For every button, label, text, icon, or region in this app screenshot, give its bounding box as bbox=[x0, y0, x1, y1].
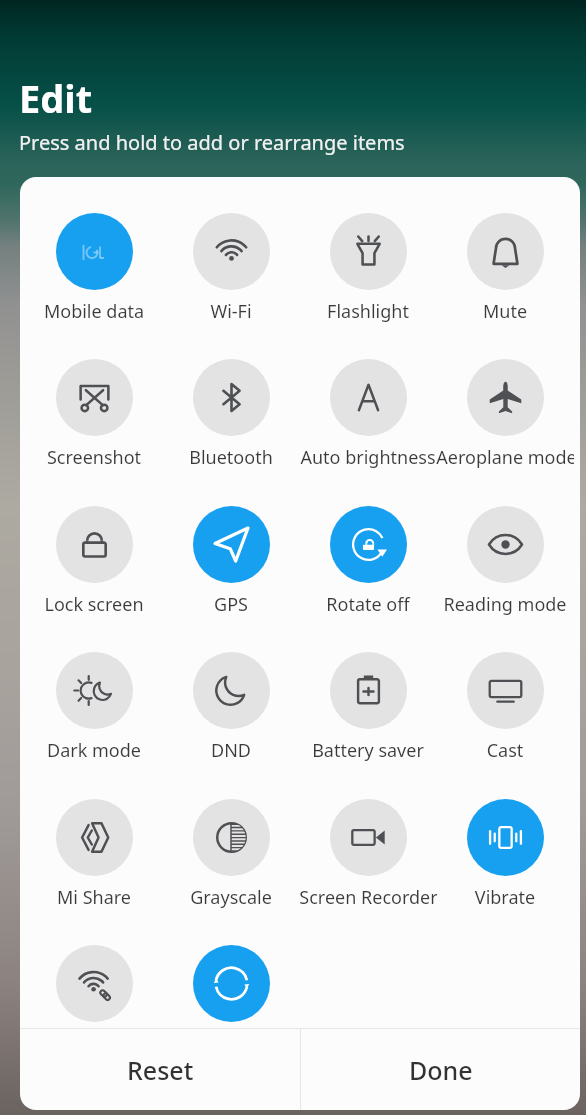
staticText: Grayscale bbox=[162, 885, 300, 910]
button[interactable]: GPS bbox=[163, 506, 300, 618]
button[interactable]: Bluetooth bbox=[163, 359, 300, 471]
staticText: Flashlight bbox=[299, 299, 437, 324]
staticText: Edit bbox=[19, 72, 93, 124]
button[interactable]: Dark mode bbox=[26, 652, 163, 764]
staticText: Cast bbox=[436, 738, 574, 763]
button[interactable]: Done bbox=[301, 1029, 580, 1110]
button[interactable]: Hotspot bbox=[26, 945, 163, 1057]
button[interactable]: Auto brightness bbox=[300, 359, 437, 471]
staticText: Done bbox=[409, 1053, 473, 1087]
staticText: Screenshot bbox=[25, 445, 163, 470]
button[interactable]: Mobile data bbox=[26, 213, 163, 325]
staticText: Aeroplane mode bbox=[436, 445, 574, 470]
button[interactable]: Vibrate bbox=[437, 799, 574, 911]
button[interactable]: Wi-Fi bbox=[163, 213, 300, 325]
staticText: GPS bbox=[162, 592, 300, 617]
staticText: Battery saver bbox=[299, 738, 437, 763]
button[interactable]: Sync bbox=[163, 945, 300, 1057]
staticText: Press and hold to add or rearrange items bbox=[19, 129, 405, 156]
staticText: Mi Share bbox=[25, 885, 163, 910]
staticText: Rotate off bbox=[299, 592, 437, 617]
button[interactable]: Reset bbox=[20, 1029, 300, 1110]
button[interactable]: Cast bbox=[437, 652, 574, 764]
button[interactable]: Reading mode bbox=[437, 506, 574, 618]
button[interactable]: Mute bbox=[437, 213, 574, 325]
button[interactable]: Flashlight bbox=[300, 213, 437, 325]
staticText: Mobile data bbox=[25, 299, 163, 324]
button[interactable]: Screenshot bbox=[26, 359, 163, 471]
button[interactable]: Screen Recorder bbox=[300, 799, 437, 911]
button[interactable]: Mi Share bbox=[26, 799, 163, 911]
staticText: Auto brightness bbox=[299, 445, 437, 470]
staticText: Lock screen bbox=[25, 592, 163, 617]
button[interactable]: Grayscale bbox=[163, 799, 300, 911]
staticText: DND bbox=[162, 738, 300, 763]
button[interactable]: DND bbox=[163, 652, 300, 764]
staticText: Dark mode bbox=[25, 738, 163, 763]
staticText: Screen Recorder bbox=[299, 885, 437, 910]
staticText: Bluetooth bbox=[162, 445, 300, 470]
staticText: Vibrate bbox=[436, 885, 574, 910]
button[interactable]: Battery saver bbox=[300, 652, 437, 764]
button[interactable]: Rotate off bbox=[300, 506, 437, 618]
staticText: Mute bbox=[436, 299, 574, 324]
button[interactable]: Aeroplane mode bbox=[437, 359, 574, 471]
staticText: Reset bbox=[127, 1053, 194, 1087]
button[interactable]: Lock screen bbox=[26, 506, 163, 618]
staticText: Wi-Fi bbox=[162, 299, 300, 324]
staticText: Reading mode bbox=[436, 592, 574, 617]
